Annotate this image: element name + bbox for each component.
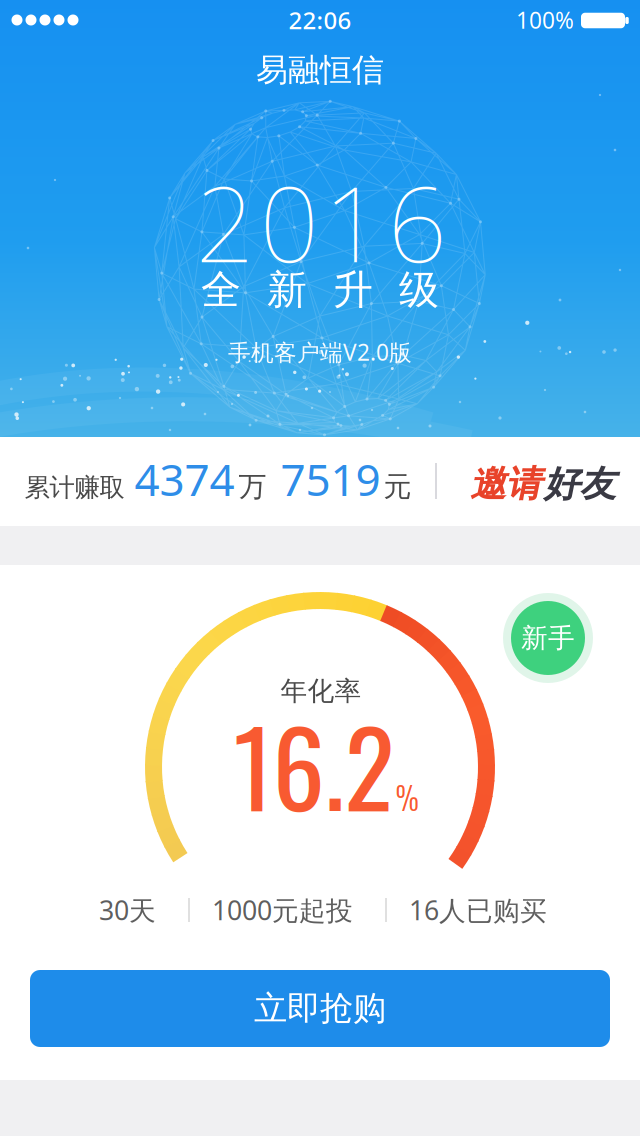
staticText: 手机客户端V2.0版 <box>228 337 412 367</box>
staticText: 级 <box>399 265 439 314</box>
staticText: 元 <box>383 470 411 504</box>
staticText: 万 <box>238 470 266 504</box>
staticText: 易融恒信 <box>256 50 384 90</box>
staticText: 累计赚取 <box>24 472 124 503</box>
staticText: 全 <box>201 265 241 314</box>
button[interactable]: 立即抢购 <box>30 970 610 1047</box>
staticText: 4374 <box>134 450 234 508</box>
staticText: 新 <box>267 265 307 314</box>
staticText: 好友 <box>544 462 616 506</box>
button[interactable]: 邀请 <box>470 462 616 506</box>
staticText: 100% <box>516 5 574 35</box>
staticText: 邀请 <box>470 462 542 506</box>
staticText: 年化率 <box>280 675 361 707</box>
staticText: 22:06 <box>288 4 351 36</box>
staticText: 新手 <box>521 622 575 654</box>
staticText: 16人已购买 <box>409 892 547 928</box>
staticText: 7519 <box>280 450 380 508</box>
staticText: 16.2 <box>233 687 394 841</box>
staticText: % <box>395 773 418 820</box>
staticText: 30天 <box>99 892 156 928</box>
staticText: 升 <box>333 265 373 314</box>
staticText: 2016 <box>195 153 446 291</box>
staticText: 立即抢购 <box>254 988 386 1029</box>
staticText: 1000元起投 <box>212 892 353 928</box>
